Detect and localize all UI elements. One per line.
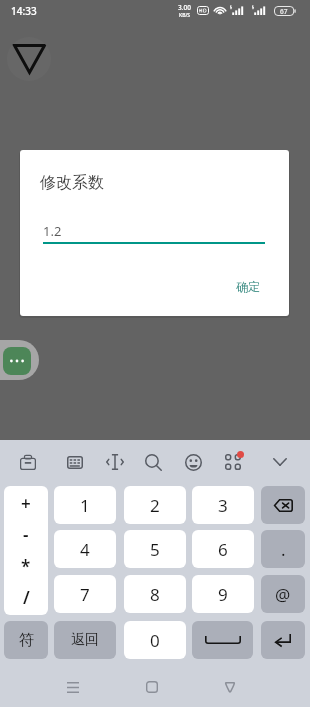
- button[interactable]: Move cursor: [99, 446, 131, 478]
- button[interactable]: 返回: [54, 621, 116, 659]
- button[interactable]: 9: [192, 575, 254, 613]
- staticText: 确定: [236, 279, 260, 294]
- button[interactable]: More options: [3, 347, 31, 375]
- staticText: 3.00: [178, 3, 191, 12]
- button[interactable]: Emoji: [177, 446, 209, 478]
- button[interactable]: Clipboard: [12, 446, 44, 478]
- button[interactable]: @: [261, 575, 305, 613]
- button[interactable]: 8: [124, 575, 186, 613]
- button[interactable]: More tools: [217, 446, 249, 478]
- staticText: +: [21, 492, 31, 515]
- staticText: 8: [150, 583, 160, 606]
- button[interactable]: 6: [192, 530, 254, 568]
- staticText: 14:33: [11, 4, 37, 18]
- staticText: -: [23, 523, 29, 546]
- button[interactable]: Search: [137, 446, 169, 478]
- staticText: 7: [80, 583, 90, 606]
- button[interactable]: +: [4, 486, 48, 615]
- staticText: .: [281, 538, 286, 561]
- staticText: 9: [218, 583, 228, 606]
- button[interactable]: 0: [124, 621, 186, 659]
- button[interactable]: Keyboard layout: [59, 446, 91, 478]
- button[interactable]: Recent apps: [53, 667, 93, 707]
- staticText: KB/S: [179, 12, 191, 19]
- staticText: 修改系数: [40, 173, 104, 193]
- button[interactable]: 5: [124, 530, 186, 568]
- button[interactable]: Home: [132, 667, 172, 707]
- staticText: 1.2: [43, 222, 62, 240]
- button[interactable]: Back: [7, 37, 51, 81]
- button[interactable]: Back: [210, 667, 250, 707]
- staticText: *: [21, 555, 31, 578]
- staticText: 2: [150, 494, 160, 517]
- staticText: /: [23, 586, 30, 609]
- staticText: 3: [218, 494, 228, 517]
- button[interactable]: 1: [54, 486, 116, 524]
- staticText: 67: [280, 7, 288, 16]
- staticText: 返回: [71, 631, 99, 649]
- button[interactable]: 符: [4, 621, 48, 659]
- button[interactable]: Hide keyboard: [264, 446, 296, 478]
- staticText: 5: [150, 538, 160, 561]
- staticText: 0: [150, 629, 160, 652]
- button[interactable]: 7: [54, 575, 116, 613]
- button[interactable]: [261, 486, 305, 524]
- staticText: 符: [19, 631, 34, 650]
- button[interactable]: 4: [54, 530, 116, 568]
- staticText: 6: [218, 538, 228, 561]
- button[interactable]: .: [261, 530, 305, 568]
- staticText: 1: [80, 494, 90, 517]
- staticText: @: [275, 583, 291, 606]
- button[interactable]: [192, 621, 253, 659]
- button[interactable]: [261, 621, 305, 659]
- button[interactable]: 确定: [226, 272, 270, 301]
- button[interactable]: 3: [192, 486, 254, 524]
- button[interactable]: 2: [124, 486, 186, 524]
- staticText: 4: [80, 538, 90, 561]
